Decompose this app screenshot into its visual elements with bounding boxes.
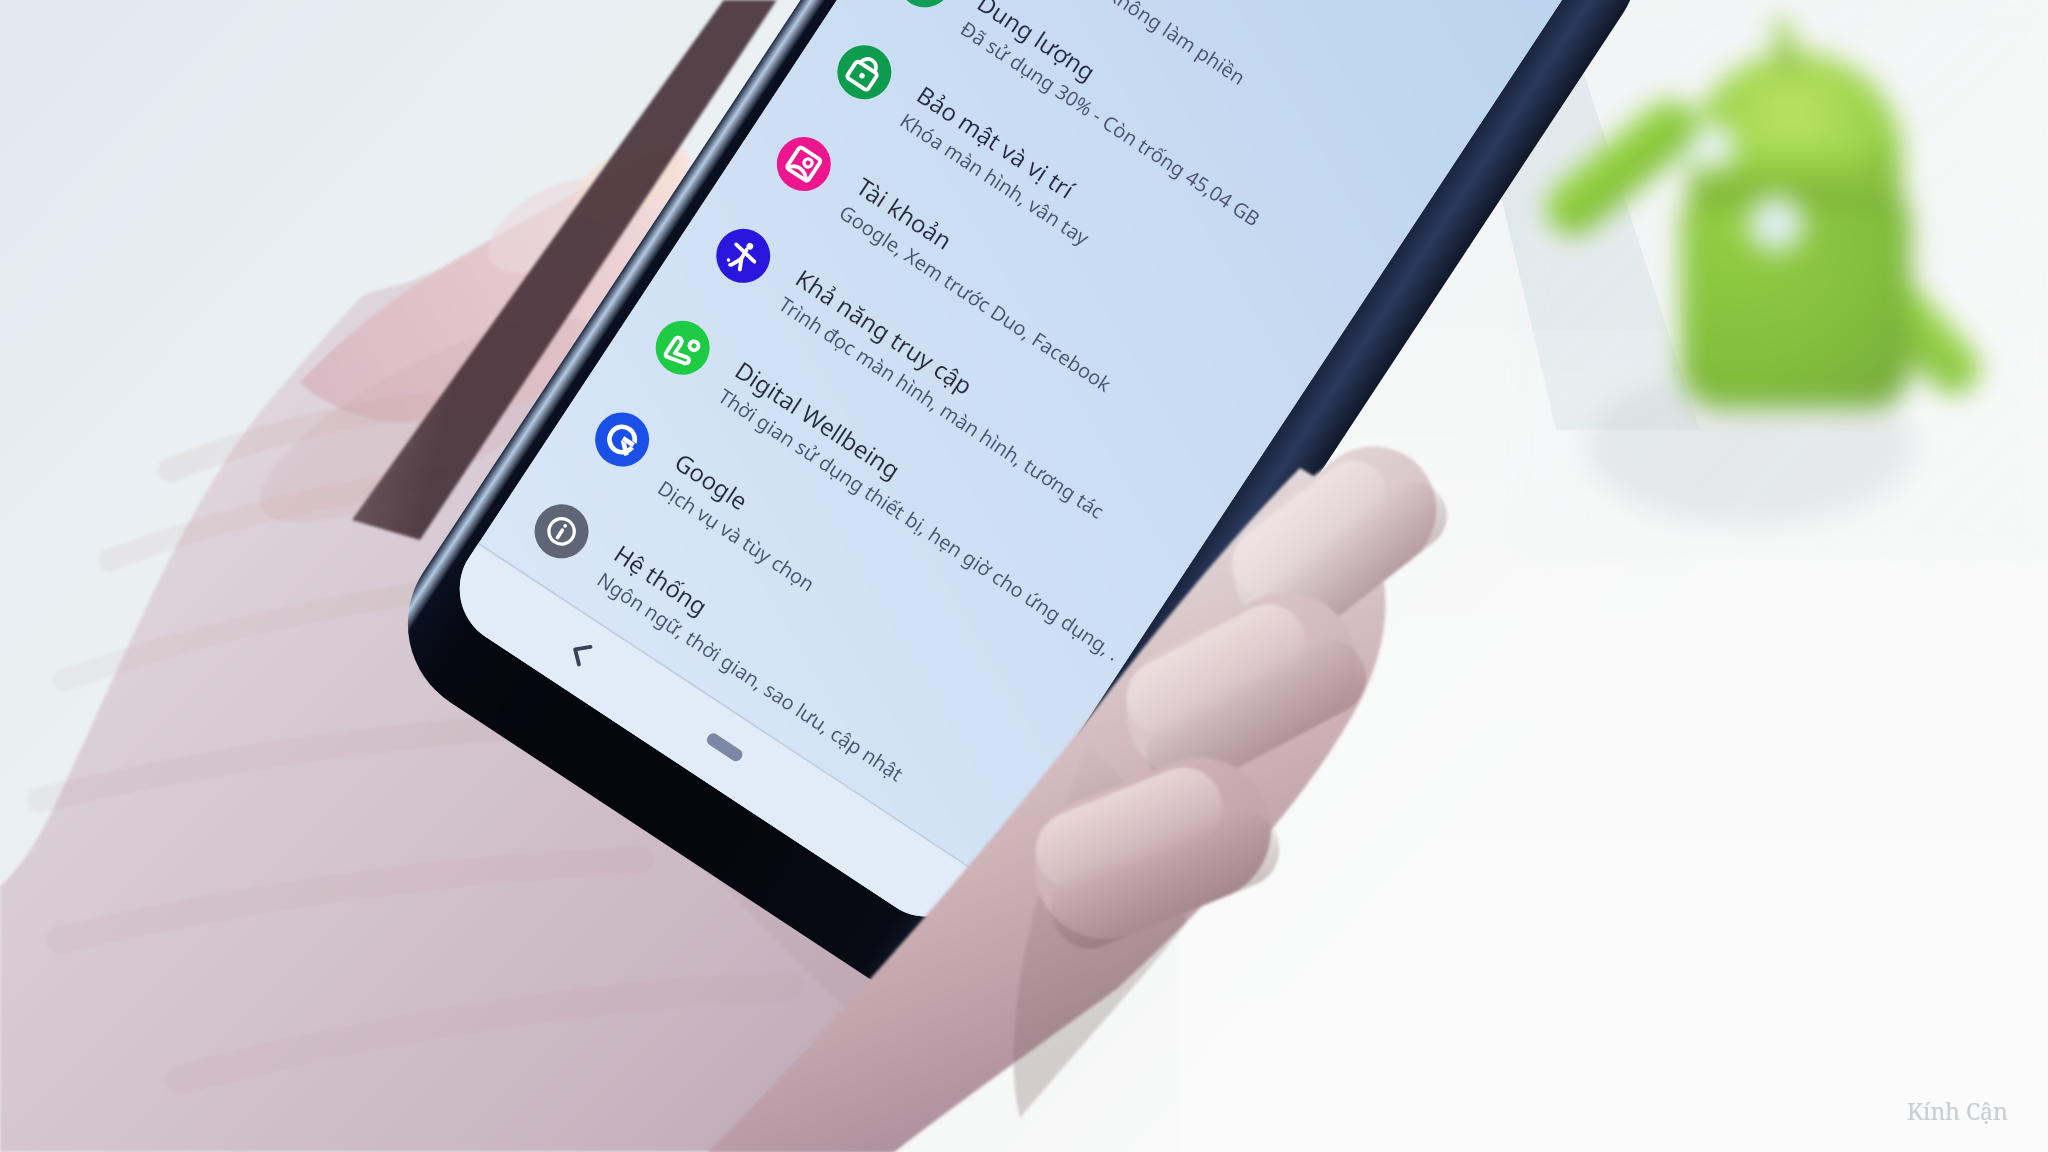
staticText: Thời gian sử dụng thiết bị, hẹn giờ cho …: [713, 382, 1124, 666]
staticText: Google: [669, 445, 754, 517]
staticText: Google, Xem trước Duo, Facebook: [834, 199, 1117, 398]
staticText: Đã sử dụng 30% - Còn trống 45,04 GB: [955, 15, 1266, 232]
staticText: Khóa màn hình, vân tay: [895, 107, 1095, 252]
button[interactable]: Hệ thống: [479, 451, 1045, 876]
staticText: Digital Wellbeing: [729, 353, 908, 486]
staticText: Dung lượng: [971, 0, 1102, 88]
staticText: Dịch vụ và tùy chọn: [653, 474, 820, 597]
button[interactable]: Tài khoản: [721, 83, 1287, 509]
staticText: Ngôn ngữ, thời gian, sao lưu, cập nhật: [592, 566, 908, 787]
staticText: Hệ thống: [608, 537, 715, 623]
button[interactable]: Âm thanh: [903, 0, 1469, 233]
staticText: Bảo mật và vị trí: [911, 78, 1081, 205]
staticText: Khả năng truy cập: [790, 261, 980, 402]
staticText: Trình đọc màn hình, màn hình, tương tác: [774, 291, 1110, 525]
staticText: Âm lượng, Không làm phiền: [1016, 0, 1251, 91]
button[interactable]: Khả năng truy cập: [660, 175, 1227, 601]
staticText: Kính Cận: [1907, 1095, 2008, 1126]
button[interactable]: Dung lượng: [842, 0, 1408, 325]
button[interactable]: Google: [539, 359, 1106, 784]
button[interactable]: Digital Wellbeing: [600, 267, 1166, 692]
staticText: Tài khoản: [850, 169, 959, 257]
button[interactable]: Home: [704, 731, 745, 764]
button[interactable]: Bảo mật và vị trí: [781, 0, 1348, 417]
button[interactable]: Back: [547, 619, 613, 686]
